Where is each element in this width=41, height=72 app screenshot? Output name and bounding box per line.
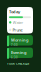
- staticText: Morning: [11, 37, 29, 43]
- staticText: Evening: [11, 50, 27, 55]
- staticText: YOUR CHECKLIST: [7, 62, 30, 65]
- button[interactable]: Morning: [7, 35, 33, 45]
- staticText: 7:00: [11, 43, 18, 47]
- staticText: 6:30: [11, 56, 18, 59]
- staticText: Water: [13, 20, 24, 25]
- staticText: Today: [9, 9, 20, 14]
- button[interactable]: Evening: [7, 47, 33, 58]
- staticText: Prune: [13, 27, 23, 32]
